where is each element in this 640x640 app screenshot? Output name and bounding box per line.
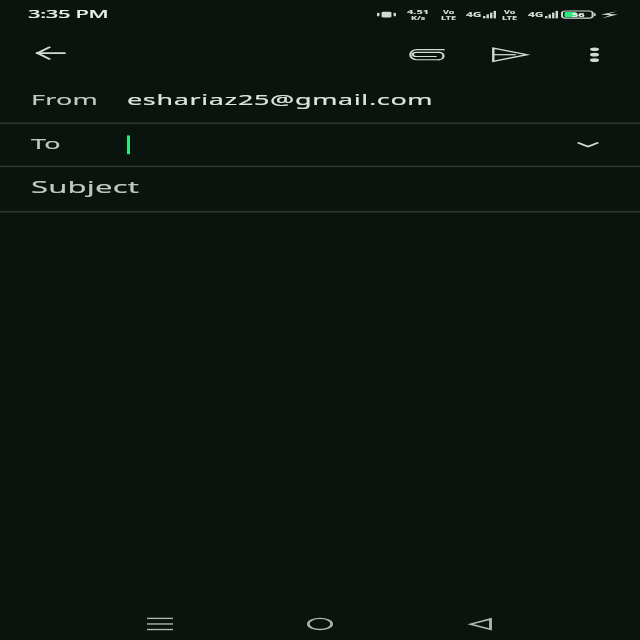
- staticText: Subject: [31, 176, 140, 198]
- button[interactable]: From: [0, 81, 640, 122]
- button[interactable]: Subject: [0, 167, 640, 211]
- staticText: 56: [572, 11, 585, 19]
- staticText: From: [31, 90, 99, 109]
- staticText: 4G: [466, 10, 482, 19]
- staticText: 4.51: [407, 7, 429, 15]
- staticText: LTE: [502, 15, 518, 21]
- staticText: Vo: [504, 8, 516, 15]
- button[interactable]: Send: [468, 30, 552, 80]
- button[interactable]: Recent apps: [80, 608, 240, 640]
- staticText: 3:35 PM: [28, 5, 109, 21]
- staticText: eshariaz25@gmail.com: [127, 90, 434, 109]
- button[interactable]: Navigate up: [2, 30, 98, 80]
- staticText: K/s: [411, 15, 426, 21]
- button[interactable]: Show more recipients: [552, 126, 624, 163]
- button[interactable]: Attach file: [384, 30, 468, 80]
- staticText: 4G: [528, 10, 544, 19]
- button[interactable]: Home: [240, 608, 400, 640]
- button[interactable]: More options: [552, 30, 636, 80]
- button[interactable]: To: [0, 124, 640, 166]
- staticText: Vo: [443, 8, 455, 15]
- button[interactable]: Back: [400, 608, 560, 640]
- staticText: LTE: [441, 15, 457, 21]
- staticText: To: [31, 134, 61, 154]
